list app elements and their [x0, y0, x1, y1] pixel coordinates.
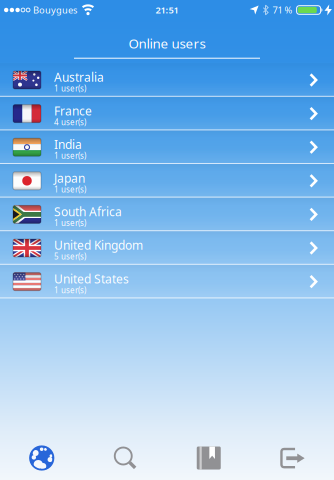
button[interactable]: Australia: [0, 63, 334, 97]
button[interactable]: Search: [83, 436, 167, 480]
staticText: 71 %: [273, 4, 293, 16]
staticText: Australia: [54, 69, 104, 85]
button[interactable]: Online users: [0, 436, 83, 480]
button[interactable]: India: [0, 130, 334, 164]
staticText: France: [54, 103, 92, 119]
staticText: 1 user(s): [54, 83, 86, 94]
staticText: 1 user(s): [54, 150, 86, 161]
staticText: 4 user(s): [54, 117, 86, 127]
staticText: 1 user(s): [54, 184, 86, 195]
staticText: Online users: [128, 34, 205, 52]
staticText: 1 user(s): [54, 218, 86, 228]
staticText: United Kingdom: [54, 237, 143, 253]
staticText: South Africa: [54, 204, 122, 219]
button[interactable]: Japan: [0, 164, 334, 198]
button[interactable]: France: [0, 97, 334, 130]
button[interactable]: South Africa: [0, 198, 334, 231]
staticText: Japan: [54, 170, 85, 186]
staticText: 21:51: [155, 4, 178, 16]
button[interactable]: United Kingdom: [0, 231, 334, 265]
staticText: United States: [54, 271, 129, 287]
button[interactable]: Library: [167, 436, 250, 480]
staticText: 1 user(s): [54, 285, 86, 295]
button[interactable]: Log out: [250, 436, 334, 480]
staticText: 5 user(s): [54, 251, 86, 262]
staticText: India: [54, 136, 82, 152]
staticText: Bouygues: [33, 4, 77, 16]
button[interactable]: United States: [0, 265, 334, 298]
